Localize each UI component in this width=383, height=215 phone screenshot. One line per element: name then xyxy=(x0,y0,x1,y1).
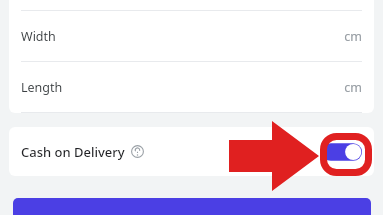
button[interactable] xyxy=(13,198,371,215)
button[interactable]: Length xyxy=(9,62,374,112)
button[interactable]: Help about cash on delivery xyxy=(131,145,144,158)
button[interactable]: Cash on Delivery toggle, on xyxy=(322,141,362,163)
staticText: cm xyxy=(344,79,362,96)
staticText: Cash on Delivery xyxy=(21,143,125,161)
button[interactable]: Cash on Delivery xyxy=(9,127,374,176)
button[interactable]: Width xyxy=(9,11,374,61)
staticText: cm xyxy=(344,28,362,45)
staticText: Width xyxy=(21,28,56,45)
staticText: Length xyxy=(21,79,63,96)
